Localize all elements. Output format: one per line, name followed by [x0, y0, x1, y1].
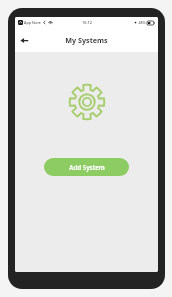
button[interactable]: Add System [44, 158, 129, 176]
staticText: 48% [138, 20, 146, 25]
button[interactable]: Back [15, 31, 33, 49]
staticText: Add System [69, 163, 105, 171]
staticText: My Systems [65, 35, 108, 45]
staticText: 16:12 [82, 20, 92, 25]
staticText: App Store [24, 20, 41, 25]
